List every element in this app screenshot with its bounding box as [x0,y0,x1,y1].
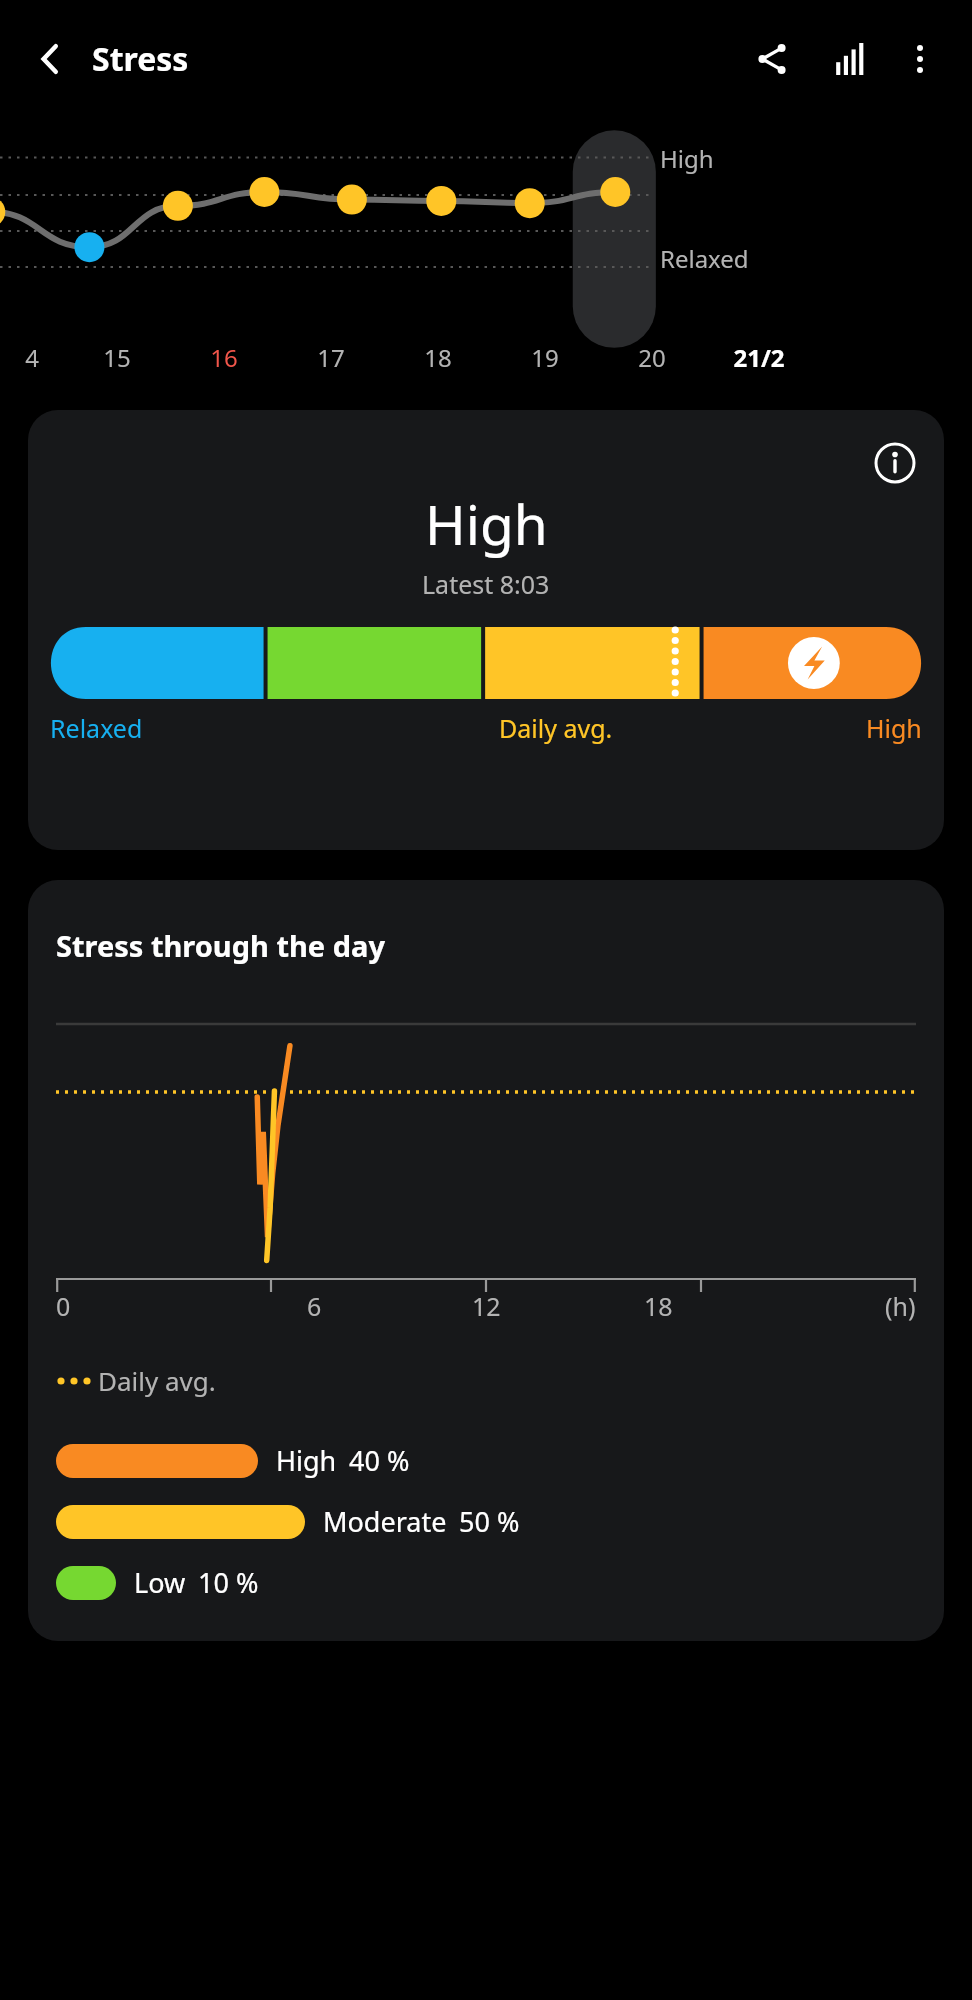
staticText: Stress [92,37,189,81]
staticText: Latest 8:03 [422,567,550,601]
staticText: High [866,711,922,745]
staticText: 18 [644,1289,673,1323]
staticText: 16 [210,341,238,374]
staticText: 19 [531,341,559,374]
button[interactable]: Info [862,430,928,496]
staticText: High [425,486,548,561]
staticText: 15 [103,341,131,374]
button[interactable]: More options [888,27,952,91]
staticText: Daily avg. [499,711,613,745]
staticText: Stress through the day [56,926,385,965]
staticText: 6 [307,1289,322,1323]
staticText: 21/2 [733,341,785,374]
staticText: Relaxed [50,711,143,745]
staticText: 40 % [349,1442,410,1479]
staticText: High [660,142,714,175]
staticText: Daily avg. [98,1363,216,1398]
staticText: 4 [25,341,39,374]
staticText: 18 [424,341,452,374]
staticText: 0 [56,1289,71,1323]
staticText: Moderate [323,1503,447,1540]
staticText: 50 % [459,1503,520,1540]
staticText: 12 [472,1289,501,1323]
button[interactable]: Share [740,27,804,91]
staticText: 17 [317,341,345,374]
button[interactable]: Back [20,29,80,89]
button[interactable]: Chart [816,27,880,91]
staticText: Relaxed [660,242,749,275]
staticText: High [276,1442,337,1479]
staticText: 10 % [198,1564,259,1601]
staticText: 20 [638,341,666,374]
staticText: Low [134,1564,186,1601]
button[interactable]: Stress through the day [28,880,944,1641]
staticText: (h) [885,1289,916,1323]
button[interactable]: Info [28,410,944,850]
